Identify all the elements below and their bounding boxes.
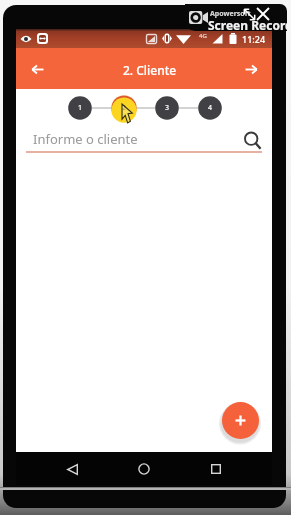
button[interactable]: Close [254,5,272,23]
button[interactable]: Back [56,453,88,485]
staticText: 2 [122,103,127,113]
button[interactable]: Next [237,55,265,83]
button[interactable]: 1 [67,95,93,121]
button[interactable]: Home [128,453,160,485]
button[interactable]: Expand [240,5,258,23]
staticText: Informe o cliente [33,130,138,148]
staticText: 4 [208,103,213,113]
staticText: 2. Cliente [123,62,177,78]
button[interactable]: 3 [154,95,180,121]
staticText: 11:24 [242,33,266,45]
staticText: 3 [165,103,170,113]
staticText: Apowersoft [210,9,251,19]
button[interactable]: 2 [111,95,137,121]
button[interactable]: 4 [197,95,223,121]
button[interactable]: Recents [200,453,232,485]
staticText: Screen Recorder [208,17,287,31]
button[interactable]: Add [222,402,259,439]
button[interactable]: Search [242,130,264,152]
staticText: 1 [78,103,83,113]
button[interactable]: Back [23,55,51,83]
staticText: 4G [199,32,207,40]
